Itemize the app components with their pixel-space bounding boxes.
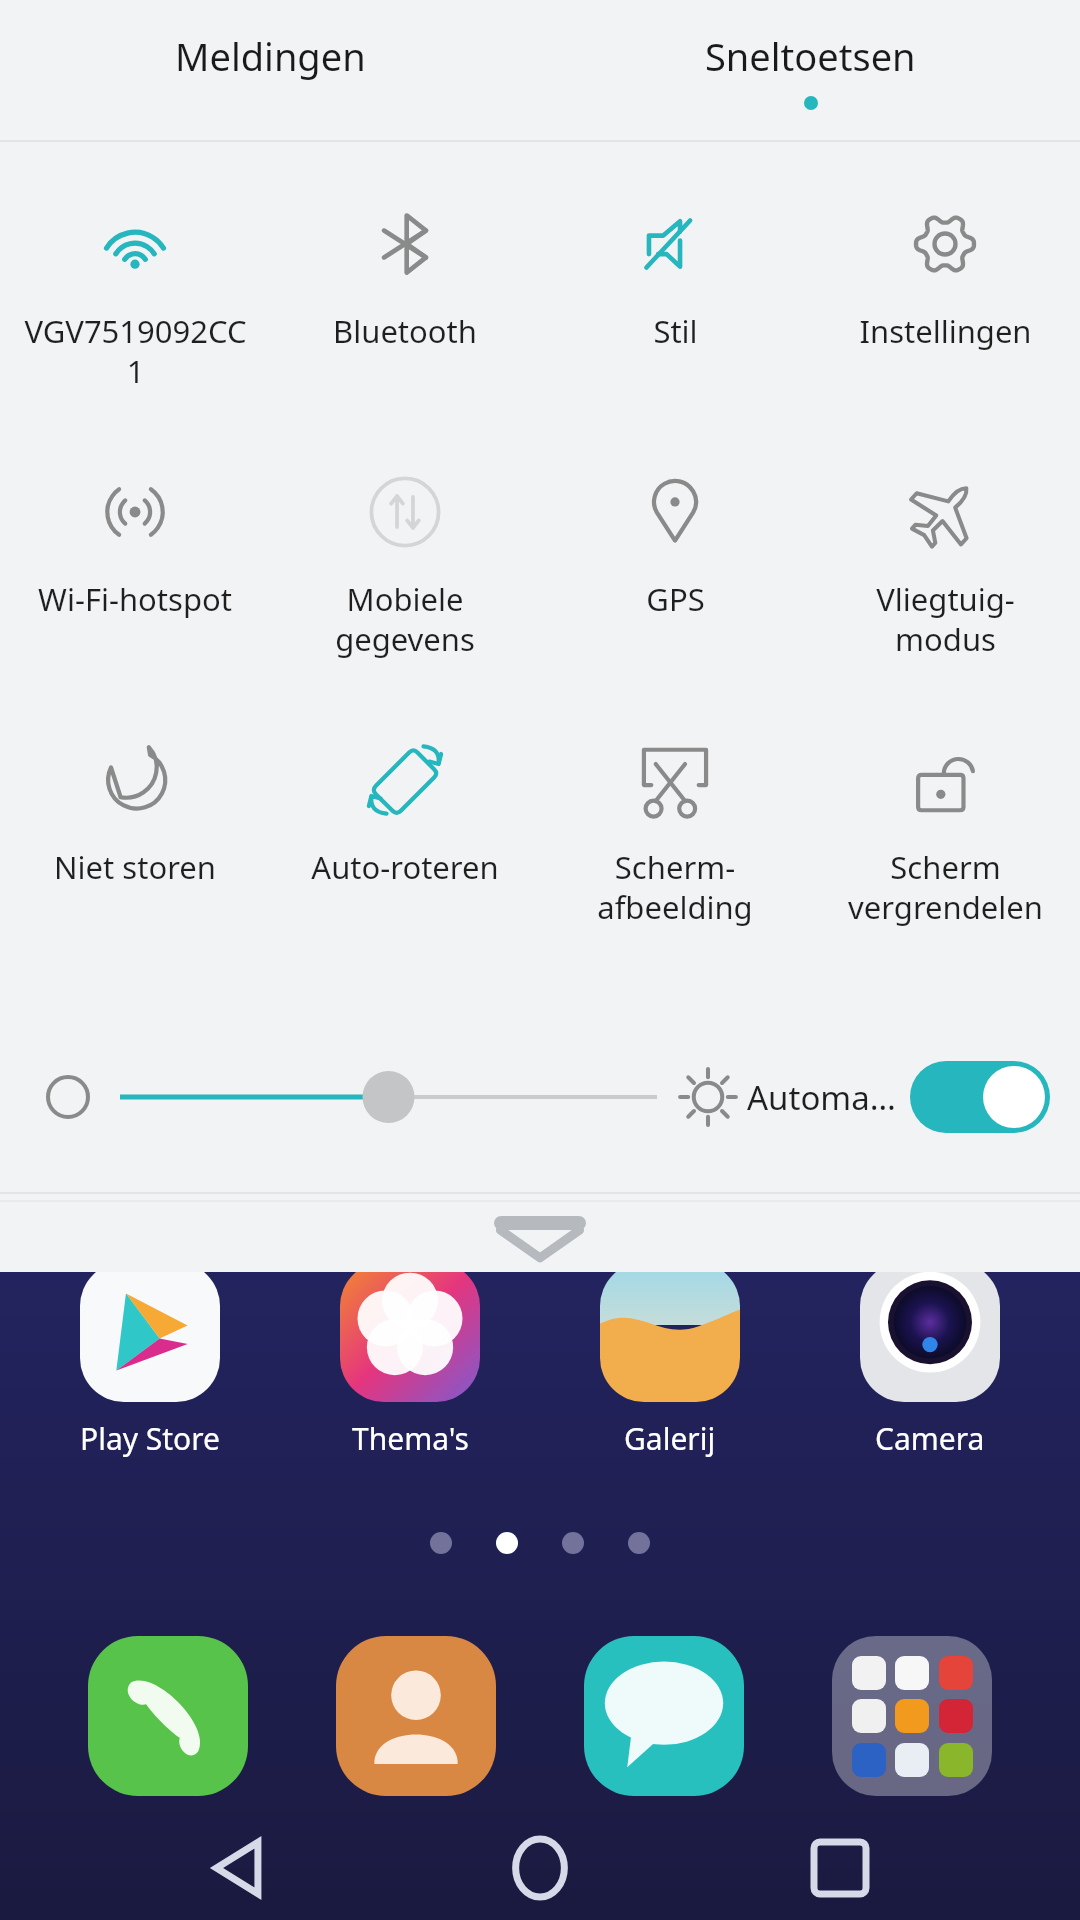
staticText: Scherm- afbeelding (597, 846, 753, 928)
staticText: Camera (875, 1418, 985, 1459)
button[interactable]: App (584, 1636, 744, 1796)
button[interactable]: Play Store (40, 1262, 260, 1459)
staticText: Automa… (747, 1075, 896, 1120)
staticText: Meldingen (175, 30, 366, 82)
staticText: Mobiele gegevens (335, 578, 475, 660)
button[interactable]: Scherm- afbeelding (540, 738, 810, 928)
staticText: Stil (653, 310, 698, 352)
button[interactable]: Terug (180, 1816, 300, 1920)
button[interactable]: Automatische helderheid (910, 1061, 1050, 1133)
button[interactable]: App (336, 1636, 496, 1796)
button[interactable]: Helderheid (120, 1059, 657, 1135)
staticText: VGV7519092CC 1 (24, 310, 247, 392)
button[interactable]: Wi-Fi-hotspot (0, 470, 270, 620)
button[interactable]: Stil (540, 202, 810, 352)
button[interactable]: Startscherm (480, 1816, 600, 1920)
button[interactable]: Recente apps (780, 1816, 900, 1920)
button[interactable]: Niet storen (0, 738, 270, 888)
button[interactable]: Vliegtuig- modus (810, 470, 1080, 660)
staticText: Wi-Fi-hotspot (38, 578, 232, 620)
staticText: Sneltoetsen (705, 30, 916, 82)
button[interactable]: Camera (820, 1262, 1040, 1459)
staticText: Niet storen (54, 846, 216, 888)
button[interactable]: Scherm vergrendelen (810, 738, 1080, 928)
staticText: GPS (646, 578, 705, 620)
staticText: Play Store (80, 1418, 220, 1459)
button[interactable]: VGV7519092CC 1 (0, 202, 270, 392)
button[interactable]: Galerij (560, 1262, 780, 1459)
button[interactable]: App (88, 1636, 248, 1796)
button[interactable]: Sneltoetsen (540, 0, 1080, 140)
staticText: Vliegtuig- modus (876, 578, 1015, 660)
staticText: Instellingen (859, 310, 1032, 352)
staticText: Galerij (624, 1418, 716, 1459)
button[interactable]: Sluiten (494, 1216, 586, 1230)
button[interactable]: Mobiele gegevens (270, 470, 540, 660)
button[interactable]: Bluetooth (270, 202, 540, 352)
button[interactable]: GPS (540, 470, 810, 620)
staticText: Scherm vergrendelen (848, 846, 1043, 928)
staticText: Auto-roteren (311, 846, 499, 888)
button[interactable]: App (832, 1636, 992, 1796)
staticText: Thema's (352, 1418, 469, 1459)
button[interactable]: Lage helderheid (30, 1059, 106, 1135)
button[interactable]: Instellingen (810, 202, 1080, 352)
button[interactable]: Auto-roteren (270, 738, 540, 888)
staticText: Bluetooth (333, 310, 477, 352)
button[interactable]: Thema's (300, 1262, 520, 1459)
button[interactable]: Meldingen (0, 0, 540, 140)
